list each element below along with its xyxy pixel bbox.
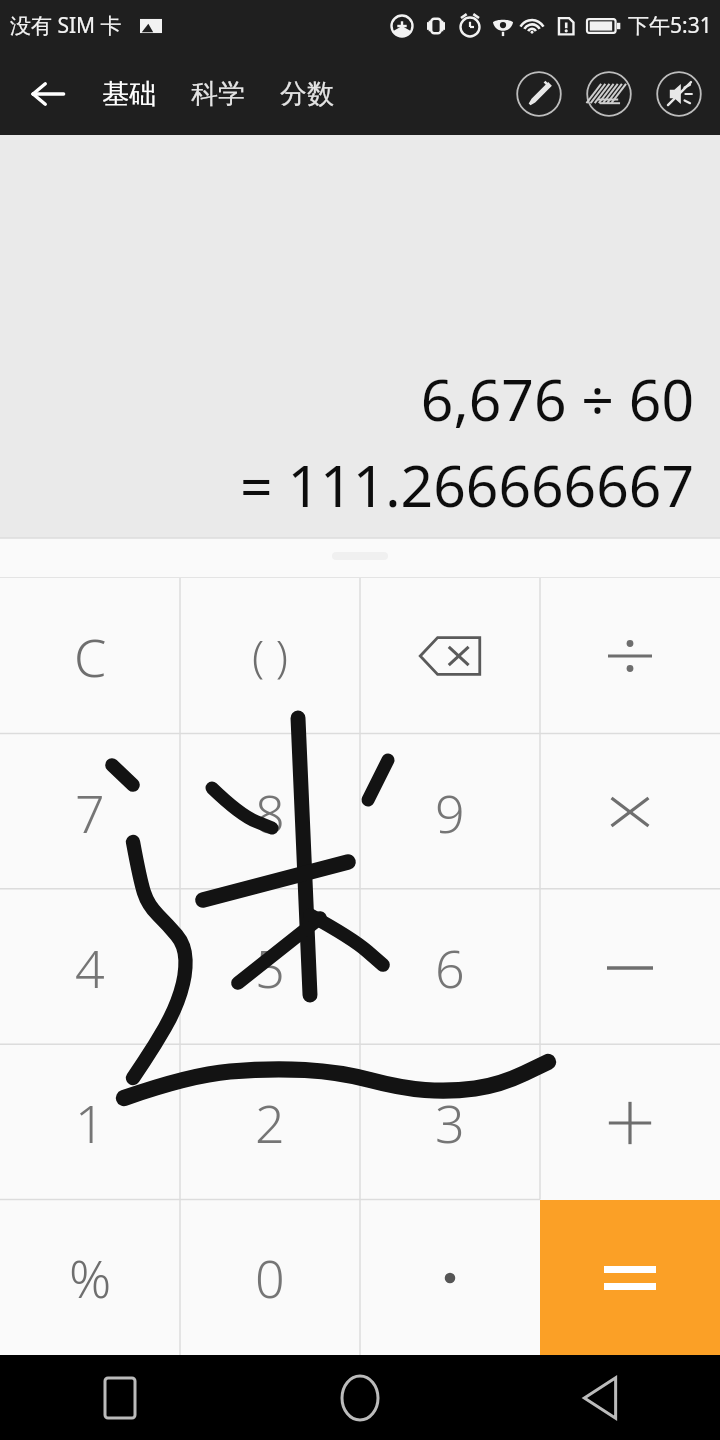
staticText: % — [69, 1242, 112, 1313]
button[interactable]: ( ) — [180, 578, 360, 734]
button[interactable]: 2 — [180, 1045, 360, 1200]
button[interactable] — [540, 578, 720, 734]
button[interactable]: 5 — [180, 890, 360, 1045]
button[interactable]: 1 — [0, 1045, 180, 1200]
staticText: 3 — [435, 1087, 465, 1158]
button[interactable]: Edit — [516, 71, 562, 117]
button[interactable] — [360, 1200, 540, 1355]
button[interactable]: 基础 — [100, 71, 158, 117]
staticText: 6 — [435, 932, 465, 1003]
button[interactable]: 科学 — [189, 71, 247, 117]
staticText: 科学 — [191, 77, 245, 111]
staticText: 1 — [75, 1087, 105, 1158]
staticText: C — [74, 621, 107, 692]
staticText: 5 — [255, 932, 285, 1003]
button[interactable]: 3 — [360, 1045, 540, 1200]
button[interactable] — [540, 734, 720, 890]
button[interactable]: Handwriting pad — [586, 71, 632, 117]
button[interactable]: Back — [480, 1355, 720, 1440]
button[interactable]: 9 — [360, 734, 540, 890]
button[interactable]: Home — [240, 1355, 480, 1440]
button[interactable]: C — [0, 578, 180, 734]
button[interactable]: Recents — [0, 1355, 240, 1440]
staticText: 分数 — [280, 77, 334, 111]
other: Backspace — [419, 633, 481, 679]
button[interactable]: Mute — [656, 71, 702, 117]
button[interactable] — [540, 890, 720, 1045]
button[interactable]: 6 — [360, 890, 540, 1045]
staticText: 7 — [75, 777, 105, 848]
button[interactable]: 0 — [180, 1200, 360, 1355]
staticText: 2 — [255, 1087, 285, 1158]
button[interactable]: Equals — [540, 1200, 720, 1355]
staticText: 没有 SIM 卡 — [10, 11, 122, 40]
button[interactable]: 8 — [180, 734, 360, 890]
staticText: 6,676 ÷ 60 — [420, 360, 694, 438]
button[interactable]: Back — [22, 68, 74, 120]
staticText: 基础 — [102, 77, 156, 111]
staticText: 8 — [255, 777, 285, 848]
button[interactable]: 4 — [0, 890, 180, 1045]
staticText: 下午5:31 — [628, 11, 712, 40]
button[interactable]: % — [0, 1200, 180, 1355]
staticText: 0 — [255, 1242, 285, 1313]
staticText: 9 — [435, 777, 465, 848]
button[interactable]: 7 — [0, 734, 180, 890]
other: Equals — [604, 1263, 656, 1293]
button[interactable]: 分数 — [278, 71, 336, 117]
staticText: 4 — [75, 932, 105, 1003]
staticText: ( ) — [252, 626, 288, 686]
button[interactable]: Backspace — [360, 578, 540, 734]
staticText: = 111.266666667 — [240, 446, 694, 524]
button[interactable] — [540, 1045, 720, 1200]
